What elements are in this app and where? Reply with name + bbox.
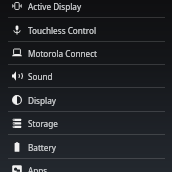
button[interactable]: Storage bbox=[0, 112, 172, 135]
button[interactable]: Active Display bbox=[0, 0, 172, 18]
button[interactable]: Battery bbox=[0, 136, 172, 159]
staticText: Display bbox=[28, 95, 56, 106]
staticText: Storage bbox=[28, 118, 58, 129]
staticText: Apps bbox=[28, 165, 48, 172]
button[interactable]: Sound bbox=[0, 65, 172, 88]
staticText: Motorola Connect bbox=[28, 48, 98, 59]
staticText: Battery bbox=[28, 142, 57, 153]
button[interactable]: Display bbox=[0, 89, 172, 112]
button[interactable]: Apps bbox=[0, 159, 172, 172]
button[interactable]: Touchless Control bbox=[0, 19, 172, 42]
staticText: Sound bbox=[28, 71, 53, 82]
staticText: Touchless Control bbox=[28, 25, 97, 36]
button[interactable]: Motorola Connect bbox=[0, 42, 172, 65]
staticText: Active Display bbox=[28, 1, 82, 12]
